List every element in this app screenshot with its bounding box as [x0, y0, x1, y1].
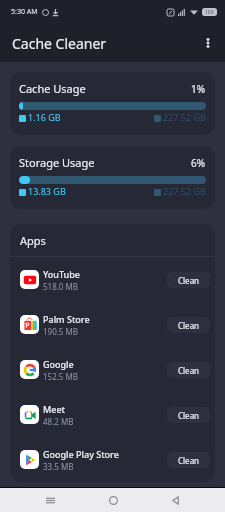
button[interactable]: Clean: [167, 317, 210, 333]
staticText: Google Play Store: [43, 448, 119, 460]
staticText: 13.83 GB: [28, 185, 66, 197]
staticText: 1%: [191, 82, 206, 96]
staticText: Clean: [178, 275, 200, 286]
staticText: 5:30 AM: [11, 7, 38, 17]
button[interactable]: Back: [163, 488, 187, 512]
staticText: Clean: [178, 320, 200, 331]
staticText: Apps: [20, 233, 46, 248]
staticText: 1.16 GB: [28, 111, 61, 123]
button[interactable]: More options: [191, 26, 225, 60]
staticText: Clean: [178, 365, 200, 376]
staticText: Clean: [178, 410, 200, 421]
staticText: YouTube: [43, 268, 80, 280]
staticText: Google: [43, 358, 74, 370]
staticText: Clean: [178, 455, 200, 466]
staticText: 227.52 GB: [163, 185, 206, 197]
staticText: Palm Store: [43, 313, 90, 325]
staticText: 227.52 GB: [163, 111, 206, 123]
staticText: 100: [205, 9, 214, 16]
staticText: 33.5 MB: [43, 461, 74, 472]
staticText: 6%: [191, 156, 206, 170]
button[interactable]: Clean: [167, 452, 210, 468]
staticText: 152.5 MB: [43, 371, 78, 382]
button[interactable]: Clean: [167, 407, 210, 423]
staticText: 48.2 MB: [43, 416, 74, 427]
button[interactable]: Recents: [38, 488, 62, 512]
staticText: 518.0 MB: [43, 281, 78, 292]
staticText: Cache Cleaner: [12, 34, 107, 53]
staticText: Storage Usage: [19, 155, 95, 170]
staticText: Meet: [43, 403, 66, 415]
button[interactable]: Home: [101, 488, 125, 512]
staticText: Cache Usage: [19, 81, 86, 96]
staticText: 190.5 MB: [43, 326, 78, 337]
button[interactable]: Clean: [167, 362, 210, 378]
button[interactable]: Clean: [167, 272, 210, 288]
